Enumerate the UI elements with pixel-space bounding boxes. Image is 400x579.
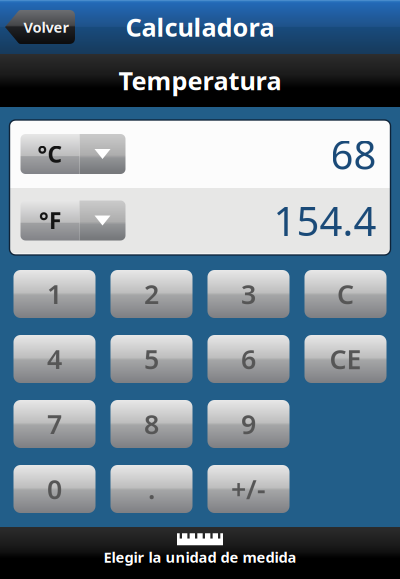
staticText: CE	[329, 341, 361, 377]
button[interactable]: 6	[207, 335, 289, 383]
staticText: 7	[47, 406, 62, 442]
button[interactable]: 0	[13, 465, 95, 513]
staticText: 68	[330, 127, 376, 180]
staticText: Calculadora	[125, 10, 274, 44]
staticText: .	[148, 471, 155, 507]
staticText: 1	[47, 276, 62, 312]
button[interactable]: 7	[13, 400, 95, 448]
button[interactable]: 1	[13, 270, 95, 318]
staticText: °F	[39, 205, 61, 235]
button[interactable]: CE	[304, 335, 386, 383]
staticText: 8	[144, 406, 159, 442]
staticText: 154.4	[273, 194, 376, 247]
button[interactable]: 8	[110, 400, 192, 448]
staticText: 6	[241, 341, 256, 377]
button[interactable]: 2	[110, 270, 192, 318]
staticText: 2	[144, 276, 159, 312]
staticText: +/-	[231, 471, 266, 507]
staticText: Temperatura	[118, 64, 281, 97]
button[interactable]: Volver	[5, 10, 75, 44]
button[interactable]: C	[304, 270, 386, 318]
button[interactable]: +/-	[207, 465, 289, 513]
staticText: °C	[37, 139, 62, 169]
staticText: 9	[241, 406, 256, 442]
staticText: C	[337, 276, 354, 312]
button[interactable]: 9	[207, 400, 289, 448]
button[interactable]: Elegir la unidad de medida	[0, 527, 400, 579]
staticText: 3	[241, 276, 256, 312]
button[interactable]: 4	[13, 335, 95, 383]
button[interactable]: °C	[20, 134, 125, 174]
staticText: 0	[47, 471, 62, 507]
staticText: 4	[47, 341, 62, 377]
staticText: 5	[144, 341, 159, 377]
staticText: Elegir la unidad de medida	[103, 547, 296, 567]
button[interactable]: 5	[110, 335, 192, 383]
button[interactable]: °F	[20, 200, 125, 240]
button[interactable]: .	[110, 465, 192, 513]
staticText: Volver	[23, 17, 69, 37]
button[interactable]: 3	[207, 270, 289, 318]
